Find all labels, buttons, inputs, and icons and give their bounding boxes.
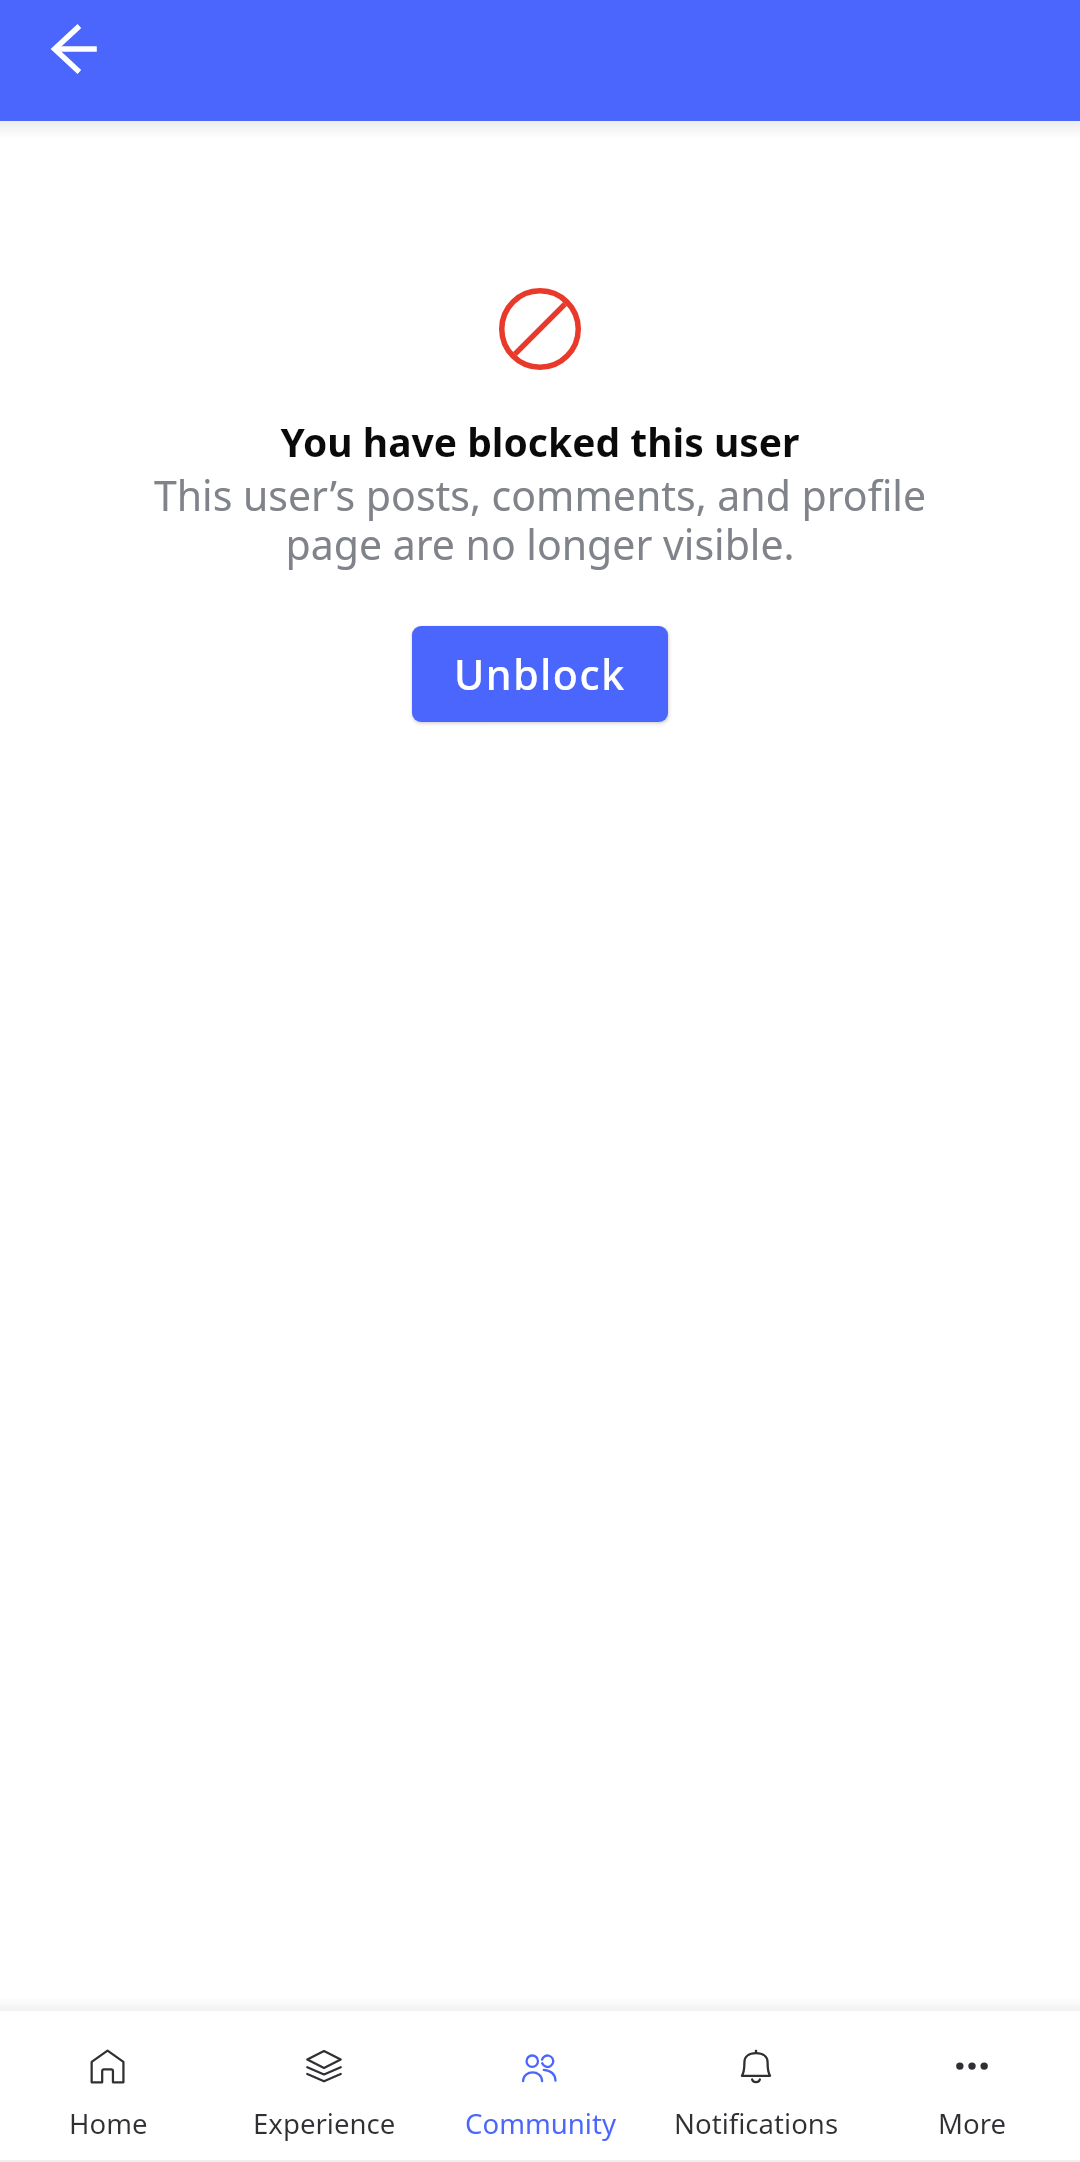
button[interactable]: Experience [216,2011,432,2160]
button[interactable]: Unblock [412,626,668,722]
staticText: This user’s posts, comments, and profile… [110,467,970,572]
staticText: More [938,2104,1007,2142]
staticText: Notifications [674,2104,839,2142]
staticText: Experience [253,2104,396,2142]
staticText: Community [465,2104,616,2142]
button[interactable]: Home [0,2011,216,2160]
button[interactable]: Community [432,2011,648,2160]
staticText: Unblock [454,646,626,702]
staticText: Home [69,2104,148,2142]
button[interactable]: Notifications [648,2011,864,2160]
button[interactable]: More [864,2011,1080,2160]
button[interactable]: Back [26,0,124,98]
staticText: You have blocked this user [0,415,1080,468]
